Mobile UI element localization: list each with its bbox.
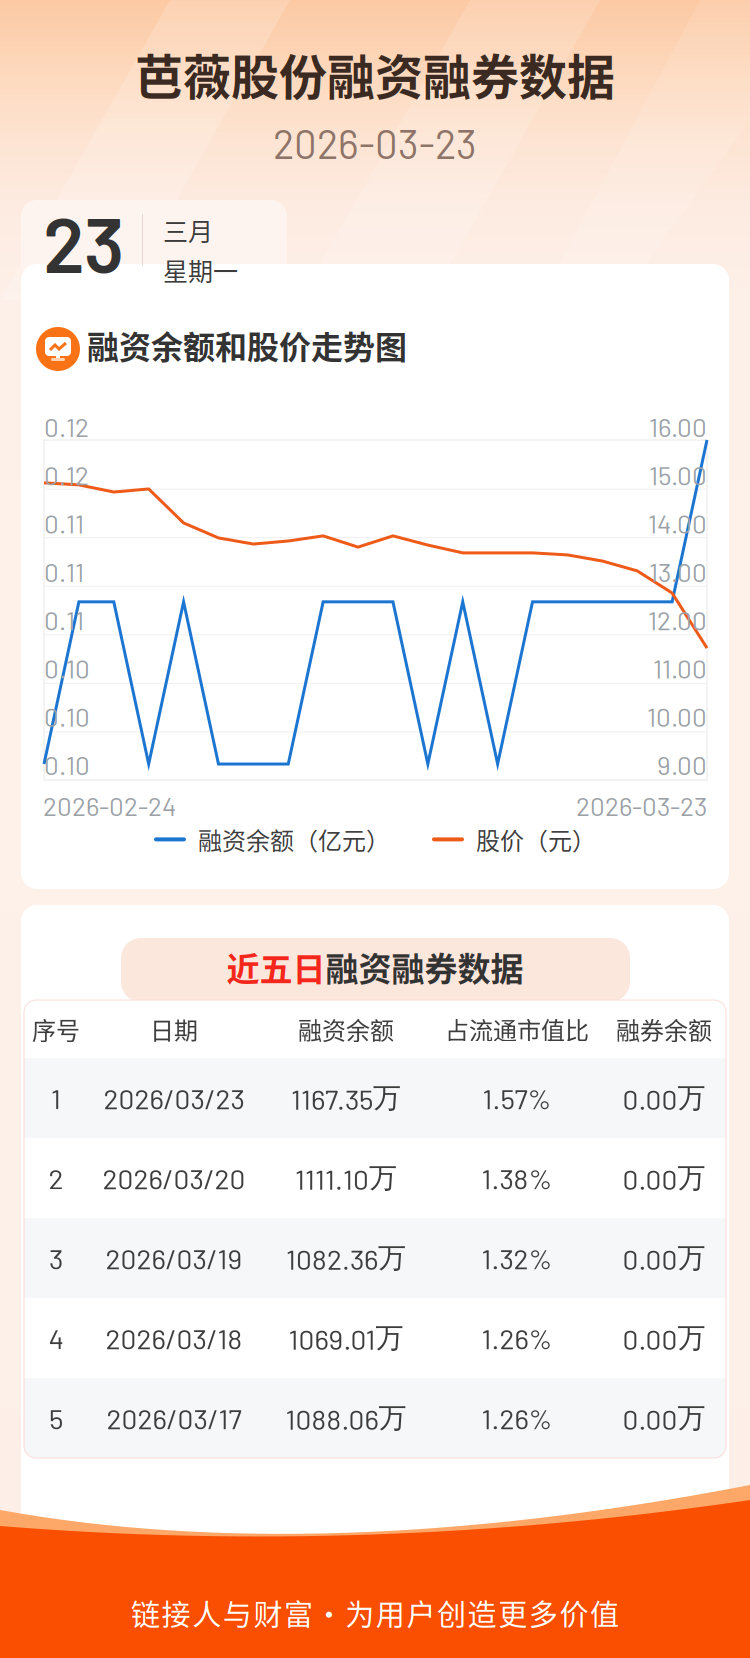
staticText: 星期一	[163, 252, 238, 288]
staticText: 2026/03/17	[106, 1401, 241, 1435]
staticText: 2026/03/18	[105, 1321, 242, 1355]
staticText: 融资余额和股价走势图	[87, 322, 407, 368]
staticText: 日期	[150, 1012, 198, 1046]
staticText: 2026-03-23	[273, 119, 477, 167]
staticText: 0.11	[44, 508, 84, 539]
staticText: 1069.01万	[288, 1320, 403, 1356]
staticText: 23	[43, 197, 124, 288]
staticText: 0.10	[44, 701, 90, 732]
staticText: 1.26%	[481, 1401, 552, 1435]
staticText: 1082.36万	[286, 1240, 406, 1276]
staticText: 链接人与财富·为用户创造更多价值	[131, 1592, 619, 1634]
staticText: 1.57%	[482, 1081, 551, 1115]
staticText: 股价（元）	[476, 822, 596, 857]
staticText: 0.00万	[622, 1320, 705, 1356]
staticText: 占流通市值比	[445, 1012, 589, 1046]
staticText: 三月	[163, 212, 213, 248]
staticText: 序号	[32, 1012, 80, 1046]
staticText: 14.00	[648, 508, 707, 539]
staticText: 16.00	[649, 411, 707, 442]
staticText: 1.32%	[481, 1241, 552, 1275]
staticText: 0.11	[44, 604, 84, 635]
staticText: 15.00	[649, 459, 707, 490]
staticText: 0.00万	[622, 1240, 705, 1276]
staticText: 0.00万	[622, 1160, 705, 1196]
staticText: 融资融券数据	[325, 943, 523, 991]
staticText: 0.10	[44, 749, 90, 780]
staticText: 5	[49, 1401, 63, 1435]
staticText: 0.12	[44, 459, 89, 490]
staticText: 2026-03-23	[576, 790, 707, 821]
staticText: 3	[49, 1241, 63, 1275]
staticText: 9.00	[657, 749, 707, 780]
staticText: 1167.35万	[291, 1080, 401, 1116]
staticText: 13.00	[649, 556, 707, 587]
staticText: 11.00	[653, 652, 707, 684]
staticText: 0.00万	[622, 1400, 705, 1436]
staticText: 融券余额	[616, 1012, 712, 1046]
staticText: 1088.06万	[285, 1400, 406, 1436]
staticText: 4	[48, 1321, 63, 1355]
staticText: 2026-02-24	[43, 790, 176, 821]
staticText: 1	[51, 1081, 61, 1115]
staticText: 2026/03/20	[102, 1161, 245, 1195]
staticText: 0.11	[44, 556, 84, 587]
staticText: 近五日	[226, 943, 325, 991]
staticText: 2	[48, 1161, 63, 1195]
staticText: 0.12	[44, 411, 89, 442]
staticText: 0.10	[44, 652, 90, 684]
staticText: 融资余额（亿元）	[198, 822, 390, 857]
staticText: 2026/03/19	[105, 1241, 242, 1275]
staticText: 1111.10万	[295, 1160, 397, 1196]
staticText: 0.00万	[622, 1080, 705, 1116]
staticText: 1.38%	[481, 1161, 552, 1195]
staticText: 12.00	[648, 604, 707, 635]
staticText: 10.00	[647, 701, 707, 732]
staticText: 芭薇股份融资融券数据	[135, 39, 615, 108]
staticText: 1.26%	[481, 1321, 552, 1355]
staticText: 2026/03/23	[103, 1081, 244, 1115]
staticText: 融资余额	[298, 1012, 394, 1046]
